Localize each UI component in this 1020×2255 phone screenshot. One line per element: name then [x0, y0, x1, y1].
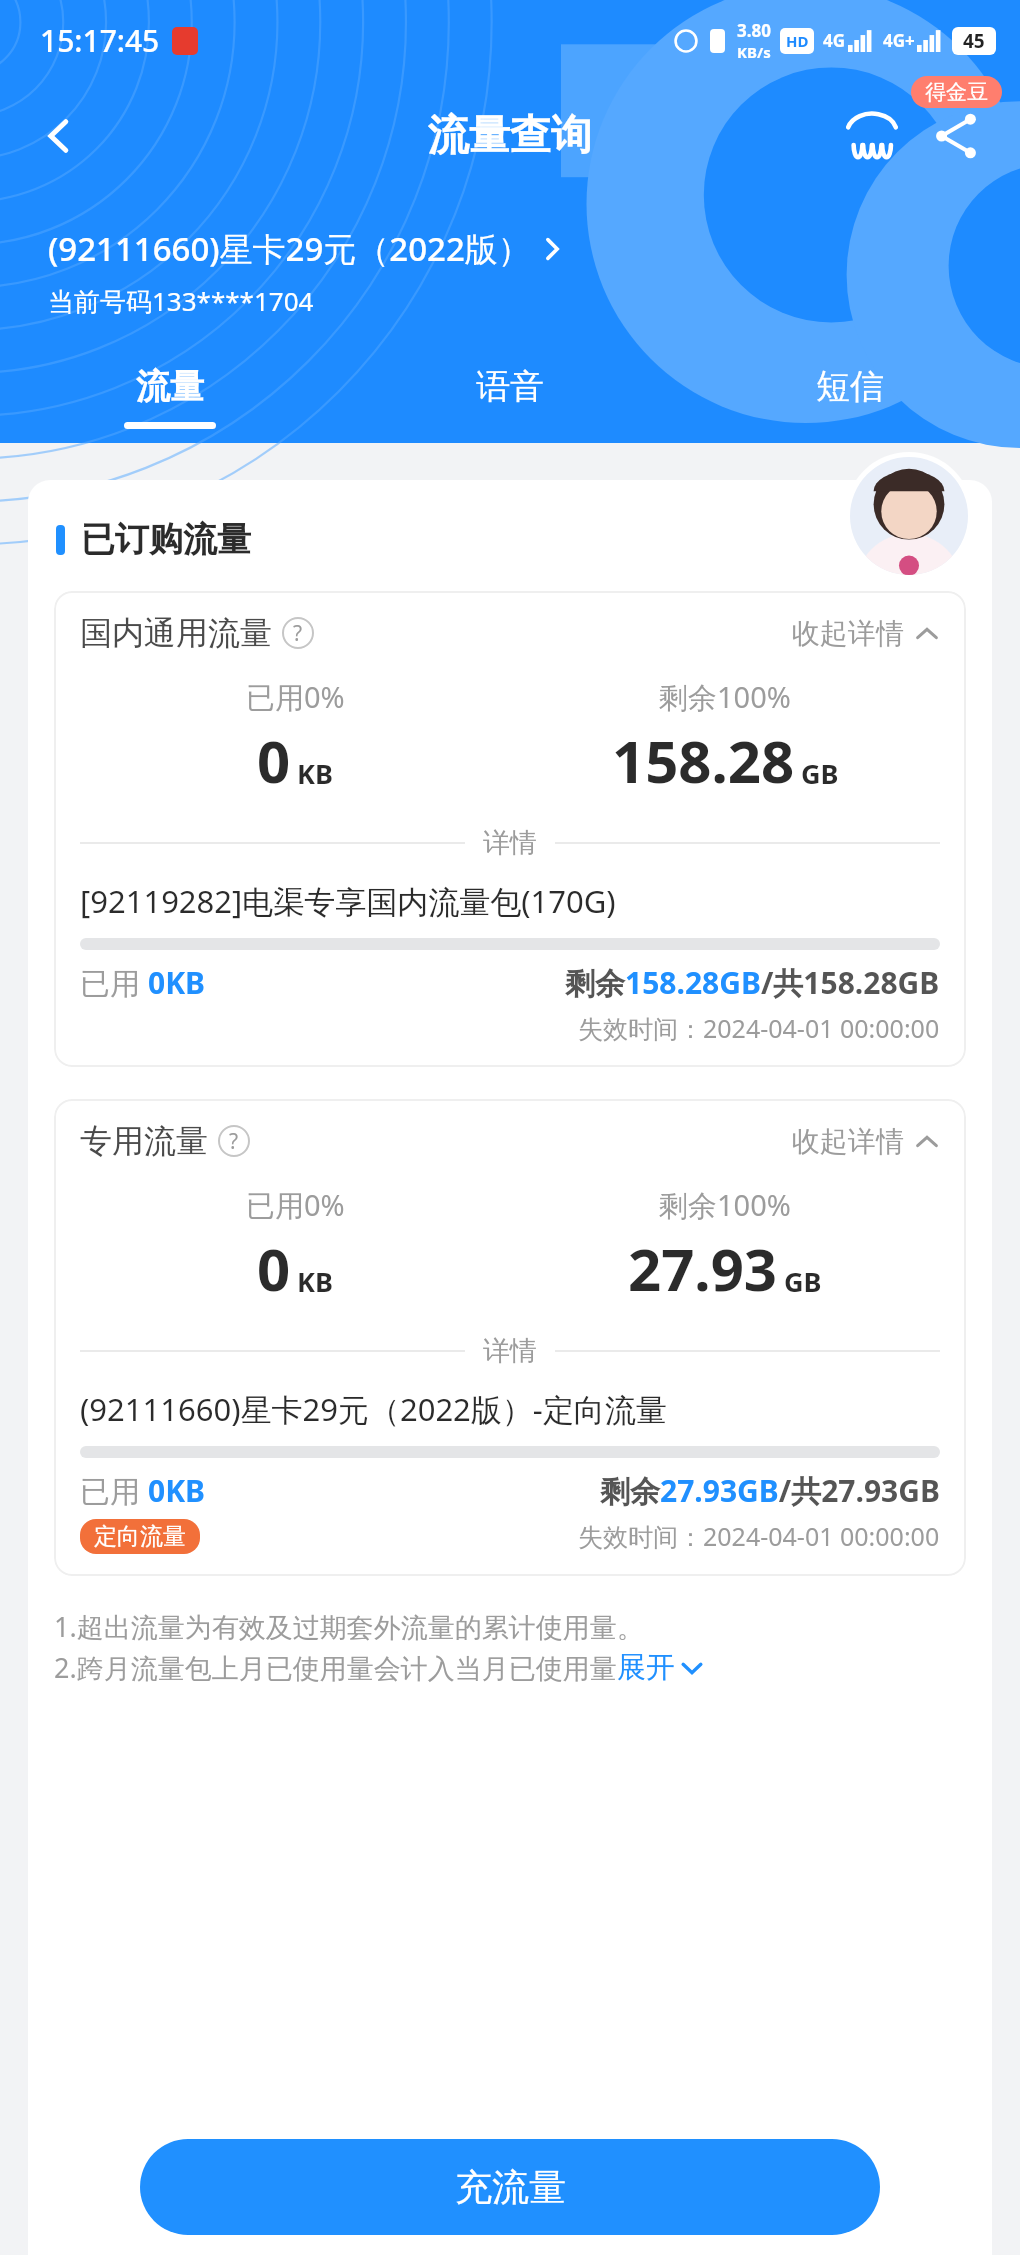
staticText: 3.80 — [737, 19, 771, 42]
staticText: 0 — [257, 1229, 291, 1308]
staticText: GB — [801, 755, 839, 792]
staticText: 语音 — [476, 365, 544, 408]
staticText: 充流量 — [455, 2164, 566, 2211]
staticText: KB/s — [737, 42, 771, 62]
staticText: 已用 — [80, 962, 148, 1003]
staticText: 已用0% — [246, 1185, 345, 1225]
staticText: GB — [784, 1263, 822, 1300]
staticText: 专用流量 — [80, 1121, 208, 1161]
staticText: 短信 — [816, 365, 884, 408]
staticText: 国内通用流量 — [80, 613, 272, 653]
button[interactable]: 流量 — [0, 365, 340, 429]
staticText: 失效时间：2024-04-01 00:00:00 — [578, 1519, 940, 1553]
staticText: 流量查询 — [428, 110, 592, 162]
staticText: 剩余100% — [659, 677, 791, 717]
button[interactable]: Gold beans — [834, 98, 910, 174]
button[interactable]: 短信 — [680, 365, 1020, 429]
staticText: 收起详情 — [792, 616, 904, 651]
button[interactable]: (92111660)星卡29元（2022版） — [48, 226, 565, 271]
button[interactable]: Online customer service — [850, 457, 968, 575]
staticText: 得金豆 — [925, 79, 988, 105]
staticText: 剩余158.28GB/共158.28GB — [565, 962, 940, 1003]
staticText: KB — [297, 1263, 333, 1300]
button[interactable]: 收起详情 — [792, 616, 940, 651]
button[interactable]: 专用流量 — [54, 1099, 966, 1576]
staticText: 剩余27.93GB/共27.93GB — [600, 1470, 940, 1511]
button[interactable]: 收起详情 — [792, 1124, 940, 1159]
staticText: 收起详情 — [792, 1124, 904, 1159]
button[interactable]: Back — [22, 99, 96, 173]
staticText: 详情 — [483, 1334, 537, 1368]
staticText: 15:17:45 — [40, 20, 160, 61]
staticText: 1.超出流量为有效及过期套外流量的累计使用量。 — [54, 1608, 644, 1645]
button[interactable]: 充流量 — [140, 2139, 880, 2235]
staticText: 已用 — [80, 1470, 148, 1511]
staticText: 4G+ — [883, 29, 915, 52]
staticText: 详情 — [483, 826, 537, 860]
staticText: 0KB — [148, 962, 206, 1003]
staticText: 已用0% — [246, 677, 345, 717]
staticText: 失效时间：2024-04-01 00:00:00 — [578, 1011, 940, 1045]
staticText: [92119282]电渠专享国内流量包(170G) — [80, 880, 616, 922]
staticText: 0 — [257, 721, 291, 800]
staticText: 45 — [963, 28, 985, 54]
staticText: 2.跨月流量包上月已使用量会计入当月已使用量 — [54, 1649, 617, 1686]
staticText: ? — [293, 619, 303, 648]
button[interactable]: 语音 — [340, 365, 680, 429]
staticText: 0KB — [148, 1470, 206, 1511]
button[interactable]: Share — [918, 98, 994, 174]
staticText: (92111660)星卡29元（2022版） — [48, 226, 531, 271]
staticText: 4G — [823, 29, 846, 52]
staticText: 27.93 — [628, 1229, 778, 1308]
staticText: KB — [297, 755, 333, 792]
staticText: 158.28 — [612, 721, 795, 800]
staticText: 流量 — [136, 365, 204, 408]
button[interactable]: 国内通用流量 — [54, 591, 966, 1067]
staticText: 定向流量 — [94, 1522, 186, 1551]
staticText: ? — [229, 1127, 239, 1156]
staticText: 剩余100% — [659, 1185, 791, 1225]
staticText: 已订购流量 — [81, 518, 251, 561]
staticText: HD — [786, 31, 809, 51]
staticText: (92111660)星卡29元（2022版）-定向流量 — [80, 1388, 667, 1430]
staticText: 当前号码133****1704 — [48, 283, 314, 319]
button[interactable]: 展开 — [617, 1649, 705, 1686]
staticText: 展开 — [617, 1649, 675, 1686]
